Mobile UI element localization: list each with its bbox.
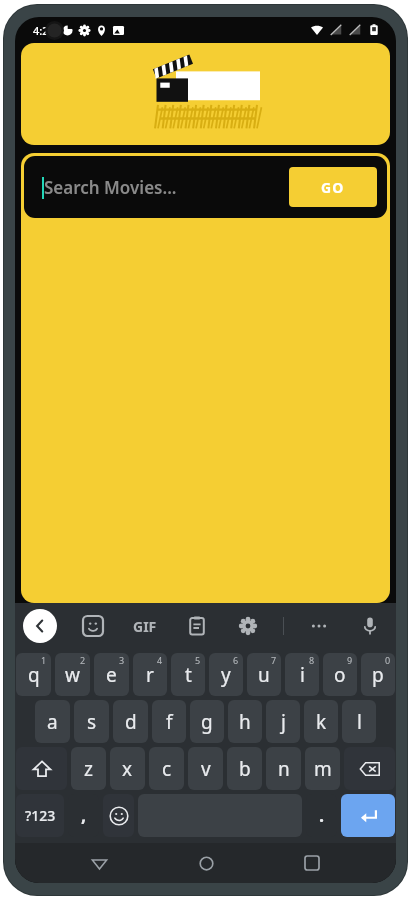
- staticText: s: [87, 709, 97, 735]
- staticText: d: [125, 709, 137, 735]
- staticText: 2: [80, 654, 86, 666]
- button[interactable]: d: [113, 700, 148, 743]
- staticText: i: [300, 662, 305, 688]
- staticText: m: [314, 756, 332, 782]
- staticText: 3: [119, 654, 125, 666]
- staticText: o: [334, 662, 346, 688]
- button[interactable]: Recents: [290, 843, 334, 883]
- staticText: GIF: [133, 617, 157, 636]
- button[interactable]: t: [171, 653, 205, 696]
- staticText: k: [316, 709, 327, 735]
- staticText: 1: [41, 654, 47, 666]
- staticText: p: [372, 662, 384, 688]
- button[interactable]: Emoji: [103, 794, 134, 837]
- staticText: w: [65, 662, 80, 688]
- staticText: z: [84, 756, 93, 782]
- button[interactable]: Home: [184, 843, 228, 883]
- button[interactable]: m: [305, 747, 340, 790]
- button[interactable]: Stickers: [77, 610, 109, 642]
- button[interactable]: Back: [77, 843, 121, 883]
- staticText: g: [201, 709, 213, 735]
- button[interactable]: b: [227, 747, 262, 790]
- staticText: b: [239, 756, 251, 782]
- button[interactable]: ,: [68, 794, 99, 837]
- button[interactable]: Clipboard: [181, 610, 213, 642]
- staticText: q: [28, 662, 40, 688]
- button[interactable]: e: [94, 653, 129, 696]
- button[interactable]: c: [149, 747, 184, 790]
- staticText: GO: [321, 178, 345, 197]
- button[interactable]: y: [209, 653, 243, 696]
- button[interactable]: GIF: [129, 613, 161, 640]
- button[interactable]: g: [190, 700, 224, 743]
- button[interactable]: u: [247, 653, 281, 696]
- staticText: c: [162, 756, 172, 782]
- staticText: .: [319, 803, 325, 828]
- button[interactable]: Backspace: [344, 747, 395, 790]
- button[interactable]: Search Movies...: [34, 156, 289, 218]
- button[interactable]: p: [361, 653, 395, 696]
- button[interactable]: l: [342, 700, 376, 743]
- staticText: 0: [385, 654, 391, 666]
- staticText: r: [146, 662, 154, 688]
- button[interactable]: Settings: [232, 610, 264, 642]
- staticText: 4:25: [33, 23, 55, 38]
- button[interactable]: v: [188, 747, 223, 790]
- staticText: Search Movies...: [44, 176, 177, 199]
- staticText: 4: [157, 654, 163, 666]
- button[interactable]: f: [152, 700, 186, 743]
- staticText: e: [106, 662, 117, 688]
- button[interactable]: ?123: [16, 794, 64, 837]
- staticText: 5: [195, 654, 201, 666]
- staticText: l: [357, 709, 362, 735]
- staticText: 9: [347, 654, 353, 666]
- button[interactable]: More options: [303, 610, 335, 642]
- staticText: 8: [309, 654, 315, 666]
- button[interactable]: w: [55, 653, 90, 696]
- button[interactable]: k: [304, 700, 338, 743]
- button[interactable]: Enter: [341, 794, 395, 837]
- staticText: t: [185, 662, 192, 688]
- staticText: 7: [271, 654, 277, 666]
- staticText: j: [281, 709, 286, 735]
- staticText: 6: [233, 654, 239, 666]
- staticText: x: [122, 756, 133, 782]
- staticText: h: [239, 709, 251, 735]
- button[interactable]: n: [266, 747, 301, 790]
- button[interactable]: [21, 43, 390, 145]
- staticText: y: [221, 662, 231, 688]
- staticText: n: [278, 756, 290, 782]
- button[interactable]: s: [74, 700, 109, 743]
- button[interactable]: j: [266, 700, 300, 743]
- staticText: v: [201, 756, 211, 782]
- button[interactable]: q: [16, 653, 51, 696]
- button[interactable]: z: [71, 747, 106, 790]
- button[interactable]: x: [110, 747, 145, 790]
- button[interactable]: o: [323, 653, 357, 696]
- button[interactable]: Shift: [16, 747, 67, 790]
- button[interactable]: a: [35, 700, 70, 743]
- button[interactable]: .: [306, 794, 337, 837]
- staticText: ,: [81, 803, 87, 828]
- button[interactable]: Back: [23, 609, 57, 643]
- button[interactable]: h: [228, 700, 262, 743]
- staticText: a: [47, 709, 58, 735]
- button[interactable]: Voice input: [354, 610, 386, 642]
- button[interactable]: i: [285, 653, 319, 696]
- button[interactable]: GO: [289, 167, 377, 207]
- staticText: u: [258, 662, 270, 688]
- staticText: f: [166, 709, 173, 735]
- button[interactable]: r: [133, 653, 167, 696]
- staticText: ?123: [25, 806, 56, 825]
